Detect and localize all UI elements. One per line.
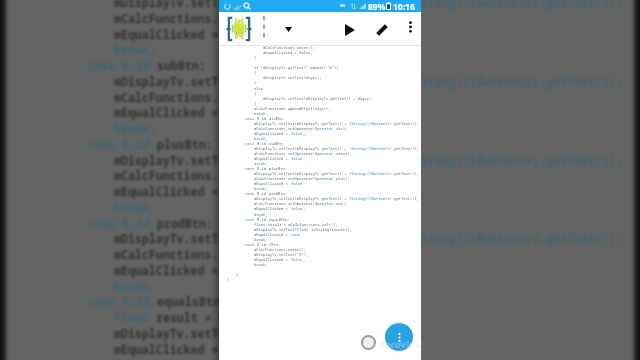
staticText: case: [87, 216, 122, 232]
staticText: false: [291, 257, 303, 262]
staticText: case: [245, 141, 257, 146]
staticText: break;: [254, 186, 268, 191]
staticText: case: [87, 58, 122, 74]
staticText: .mul);: [334, 201, 348, 206]
staticText: case: [245, 166, 257, 171]
button[interactable]: More options: [385, 323, 413, 351]
staticText: mCalcFunctions.setOperator(: [254, 176, 315, 181]
staticText: )): [334, 65, 339, 70]
staticText: {: [254, 70, 257, 75]
staticText: if (mDisplayTv.getText().equals(: [254, 65, 327, 70]
staticText: false: [291, 206, 303, 211]
staticText: prodBtn:: [157, 216, 213, 232]
staticText: Operator: [315, 176, 334, 181]
staticText: equalBtn:: [269, 217, 290, 222]
staticText: (String)((Button)v): [349, 196, 392, 201]
staticText: break;: [254, 136, 268, 141]
button[interactable]: AIDE: [225, 15, 253, 43]
staticText: }: [236, 272, 239, 277]
staticText: R.id.: [257, 116, 269, 121]
staticText: subBtn:: [157, 58, 206, 74]
staticText: break;: [114, 200, 156, 216]
staticText: mEqualClicked = false;: [114, 263, 268, 279]
button[interactable]: Select file: [277, 18, 299, 40]
staticText: mDisplayTv.setText(mDisplayTv.getText() …: [263, 96, 374, 101]
staticText: RecoView: [379, 338, 422, 350]
staticText: mEqualClicked = false;: [114, 184, 268, 200]
staticText: RecoView: [379, 338, 422, 350]
button[interactable]: More options: [399, 16, 421, 38]
button[interactable]: Edit: [368, 16, 396, 44]
staticText: }: [254, 80, 257, 85]
staticText: mDisplayTv.setText(mDisplayTv.getText() …: [114, 231, 407, 247]
staticText: equalsBtn:: [157, 294, 227, 310]
staticText: mDisplayTv.setText(: [254, 227, 297, 232]
staticText: case: [87, 137, 122, 153]
staticText: mDisplayTv.setText(: [254, 252, 297, 257]
staticText: mCalcFunctions.setOperator(Operator.div)…: [114, 11, 400, 27]
staticText: CBtn:: [269, 242, 281, 247]
staticText: mCalcFunctions.appendDigit(digit);: [254, 106, 331, 111]
staticText: 89%: [368, 1, 386, 13]
staticText: }: [254, 55, 257, 60]
staticText: R.id.: [257, 166, 269, 171]
staticText: mCalcFunctions.reset();: [254, 247, 306, 252]
staticText: ;: [303, 131, 306, 136]
staticText: false: [291, 181, 303, 186]
staticText: result = mCalcFunctions.calc();: [268, 222, 338, 227]
staticText: );: [304, 252, 309, 257]
staticText: R.id.: [122, 58, 157, 74]
staticText: subBtn:: [269, 141, 285, 146]
staticText: .getText());: [392, 146, 420, 151]
staticText: (String)((Button)v).getText());: [407, 0, 623, 11]
staticText: .getText());: [392, 171, 420, 176]
staticText: (String)((Button)v): [349, 171, 392, 176]
button[interactable]: Recorder: [361, 335, 376, 350]
staticText: mCalcFunctions.setOperator(: [254, 151, 315, 156]
staticText: break;: [254, 262, 268, 267]
staticText: plusBtn:: [157, 137, 213, 153]
staticText: ;: [303, 257, 306, 262]
button[interactable]: Run: [336, 16, 364, 44]
staticText: .getText());: [392, 196, 420, 201]
staticText: (String)((Button)v).getText());: [407, 74, 623, 90]
staticText: R.id.: [257, 191, 269, 196]
staticText: .plus);: [334, 176, 350, 181]
staticText: "0": [327, 65, 334, 70]
staticText: break;: [114, 42, 156, 58]
staticText: mCalcFunctions.setOperator(: [254, 201, 315, 206]
staticText: mEqualClicked = false;: [114, 27, 268, 43]
staticText: ;: [301, 232, 304, 237]
staticText: case: [87, 294, 122, 310]
staticText: 10:16: [393, 1, 415, 13]
staticText: case: [245, 242, 257, 247]
staticText: Operator: [315, 151, 334, 156]
staticText: mEqualClicked = false;: [114, 105, 268, 121]
staticText: ;: [303, 156, 306, 161]
staticText: false: [291, 156, 303, 161]
staticText: ;: [303, 181, 306, 186]
staticText: mDisplayTv.setText(mDisplayTv.getText() …: [114, 153, 407, 169]
staticText: result = mCalcFunctions.calc();: [156, 310, 372, 326]
staticText: mEqualClicked =: [254, 131, 291, 136]
staticText: false: [291, 131, 303, 136]
staticText: .minus);: [334, 151, 353, 156]
staticText: .toString(result));: [309, 227, 352, 232]
staticText: mEqualClicked =: [254, 232, 291, 237]
staticText: mCalcFunctions.setOperator(Operator.minu…: [114, 90, 414, 106]
staticText: mEqualClicked = true;: [114, 342, 261, 358]
staticText: break;: [254, 212, 268, 217]
staticText: mEqualClicked =: [254, 181, 291, 186]
staticText: prodBtn:: [269, 191, 288, 196]
staticText: mDisplayTv.setText(mDisplayTv.getText() …: [254, 121, 349, 126]
staticText: "0": [297, 252, 304, 257]
staticText: .getText());: [392, 121, 420, 126]
staticText: mDisplayTv.setText(mDisplayTv.getText() …: [254, 146, 349, 151]
staticText: (String)((Button)v).getText());: [407, 231, 623, 247]
staticText: mDisplayTv.setText(Float.toString(result…: [114, 326, 414, 342]
staticText: (String)((Button)v): [349, 146, 392, 151]
staticText: mDisplayTv.setText(mDisplayTv.getText() …: [254, 196, 349, 201]
staticText: mEqualClicked =: [254, 257, 291, 262]
staticText: R.id.: [122, 137, 157, 153]
